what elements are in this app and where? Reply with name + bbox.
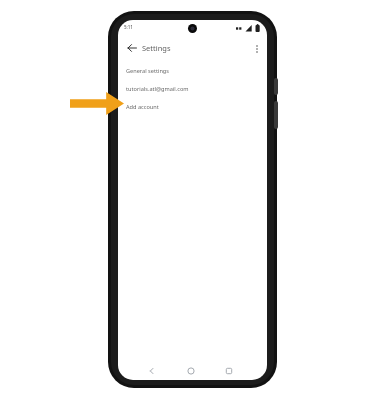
- button[interactable]: Back: [146, 365, 158, 377]
- other: Power button: [274, 78, 278, 95]
- staticText: Settings: [142, 43, 171, 53]
- staticText: General settings: [126, 67, 169, 75]
- button[interactable]: Back: [125, 41, 139, 55]
- button[interactable]: Home: [185, 365, 197, 377]
- button[interactable]: General settings: [118, 62, 267, 80]
- button[interactable]: tutorials.atl@gmail.com: [118, 80, 267, 98]
- button[interactable]: Add account: [118, 98, 267, 116]
- button[interactable]: More options: [252, 42, 262, 56]
- button[interactable]: Recent apps: [223, 365, 235, 377]
- staticText: 5:11: [124, 24, 133, 30]
- other: Volume buttons: [274, 101, 278, 129]
- staticText: Add account: [126, 103, 159, 111]
- other: Pointer arrow indicating Add account: [70, 92, 124, 115]
- staticText: tutorials.atl@gmail.com: [126, 85, 189, 93]
